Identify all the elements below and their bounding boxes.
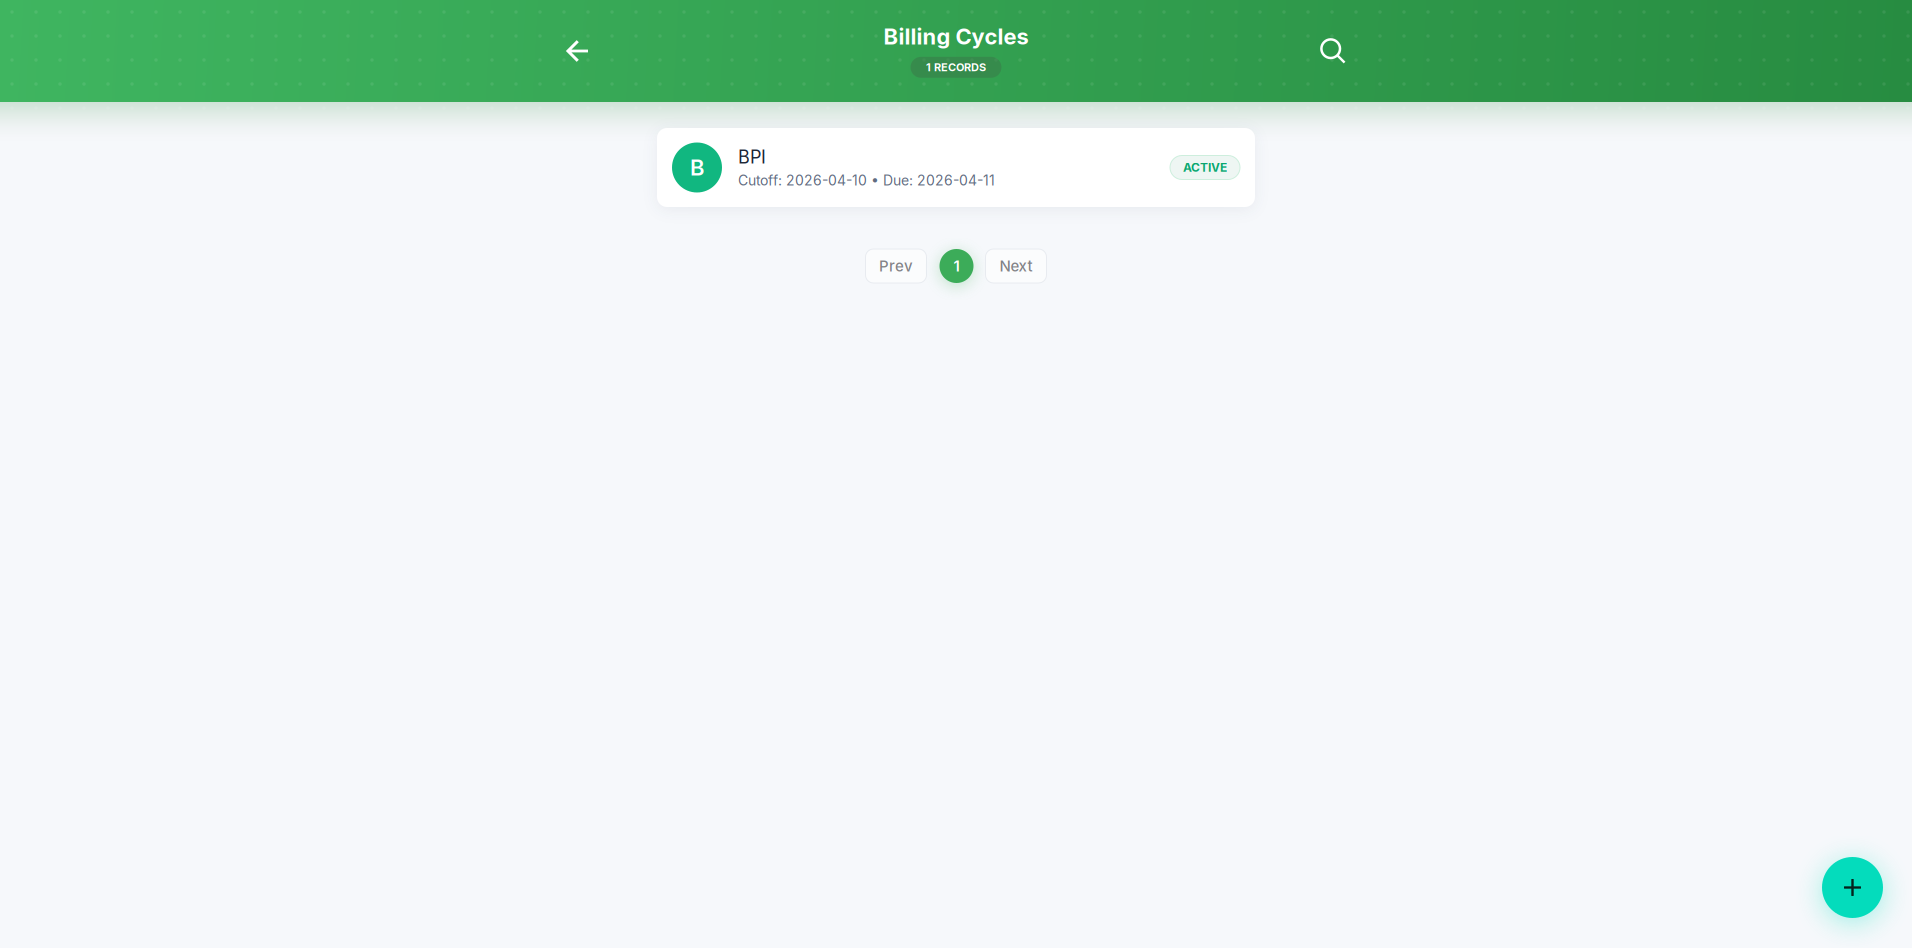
staticText: 1 (953, 257, 959, 275)
staticText: B (690, 154, 704, 181)
button[interactable]: 1 (939, 249, 973, 283)
button[interactable]: Back (554, 28, 600, 74)
button[interactable]: Search (1310, 28, 1356, 74)
staticText: Next (999, 257, 1032, 275)
staticText: Prev (879, 257, 913, 275)
staticText: Billing Cycles (883, 23, 1028, 50)
staticText: Cutoff: 2026-04-10 • Due: 2026-04-11 (738, 172, 995, 189)
button[interactable]: Add billing cycle (1822, 857, 1883, 918)
staticText: BPI (738, 146, 766, 168)
button[interactable]: B (657, 128, 1255, 207)
staticText: 1 RECORDS (926, 61, 986, 74)
button[interactable]: Next (985, 249, 1046, 283)
button[interactable]: Prev (865, 249, 926, 283)
staticText: ACTIVE (1183, 160, 1227, 175)
